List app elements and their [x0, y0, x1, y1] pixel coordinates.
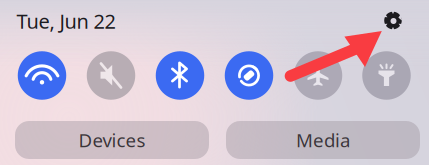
staticText: Devices — [78, 128, 145, 152]
button[interactable]: Devices — [15, 121, 209, 159]
button[interactable]: Auto-rotate — [225, 51, 273, 100]
button[interactable]: Airplane mode — [294, 51, 342, 100]
button[interactable]: Mute — [87, 51, 135, 100]
staticText: Media — [296, 128, 350, 152]
button[interactable]: Media — [226, 121, 420, 159]
button[interactable]: Internet — [18, 51, 66, 100]
button[interactable]: Flashlight — [362, 51, 411, 100]
staticText: Tue, Jun 22 — [16, 8, 115, 34]
button[interactable]: Settings — [380, 8, 406, 34]
button[interactable]: Bluetooth — [156, 51, 204, 100]
